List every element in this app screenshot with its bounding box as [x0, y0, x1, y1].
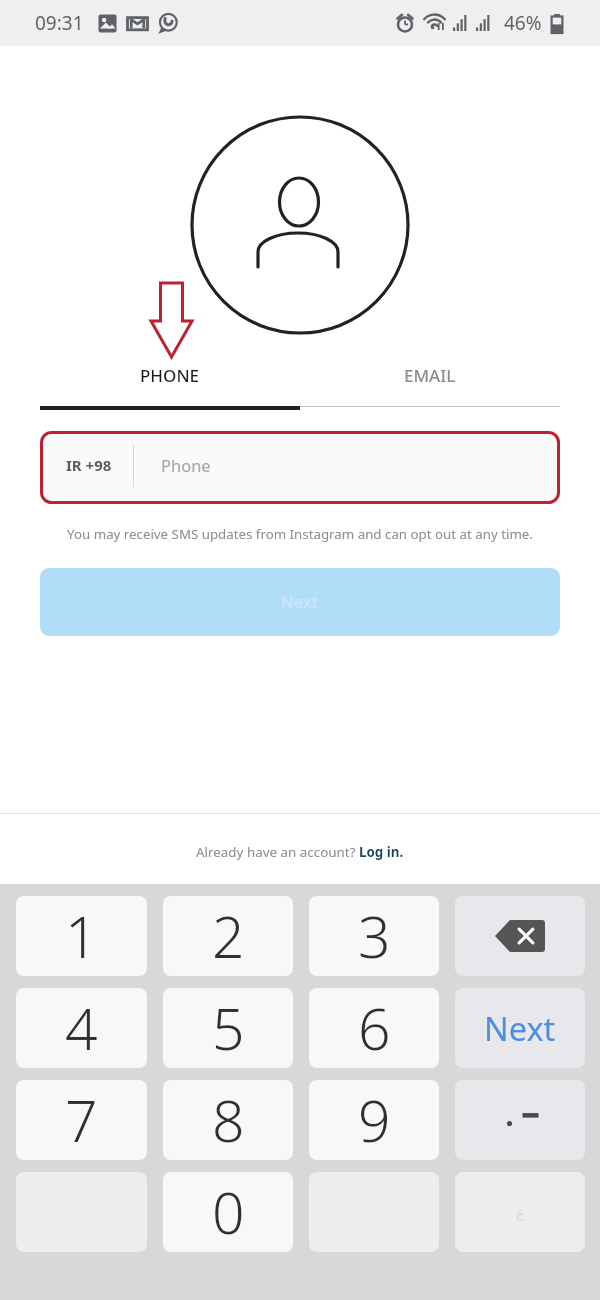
staticText: Next	[281, 591, 319, 613]
button[interactable]: 2	[163, 896, 293, 976]
button[interactable]: 4	[16, 988, 147, 1068]
button[interactable]: Already have an account?	[196, 843, 404, 861]
staticText: EMAIL	[404, 364, 456, 387]
button[interactable]: 7	[16, 1080, 147, 1160]
staticText: 7	[65, 1081, 98, 1159]
other: Pointer	[149, 281, 194, 359]
button[interactable]: 8	[163, 1080, 293, 1160]
staticText: Already have an account?	[196, 843, 359, 861]
staticText: 09:31	[35, 10, 84, 36]
staticText: 46%	[504, 10, 542, 36]
button[interactable]: 6	[309, 988, 439, 1068]
button[interactable]: 1	[16, 896, 147, 976]
staticText: 1	[65, 897, 98, 975]
button[interactable]: IR +98	[40, 431, 560, 504]
staticText: Log in.	[359, 843, 404, 861]
button[interactable]: EMAIL	[300, 355, 560, 395]
staticText: 2	[212, 897, 245, 975]
button[interactable]: Next	[40, 568, 560, 636]
staticText: 3	[358, 897, 391, 975]
staticText: You may receive SMS updates from Instagr…	[25, 525, 575, 543]
button[interactable]: Backspace	[455, 896, 585, 976]
button[interactable]: PHONE	[40, 355, 300, 395]
button[interactable]: 0	[163, 1172, 293, 1252]
button[interactable]	[455, 1080, 585, 1160]
other: Backspace	[495, 920, 545, 952]
staticText: PHONE	[140, 364, 200, 387]
button[interactable]: 3	[309, 896, 439, 976]
staticText: 8	[212, 1081, 245, 1159]
staticText: Next	[484, 1006, 556, 1050]
button[interactable]: 5	[163, 988, 293, 1068]
staticText: 6	[358, 989, 391, 1067]
staticText: 9	[358, 1081, 391, 1159]
staticText: Phone	[161, 454, 211, 476]
button[interactable]: 9	[309, 1080, 439, 1160]
staticText: 5	[212, 989, 245, 1067]
staticText: 4	[65, 989, 98, 1067]
staticText: 0	[212, 1173, 245, 1251]
staticText: ع	[516, 1204, 525, 1221]
button[interactable]: Next	[455, 988, 585, 1068]
staticText: IR +98	[66, 455, 112, 475]
